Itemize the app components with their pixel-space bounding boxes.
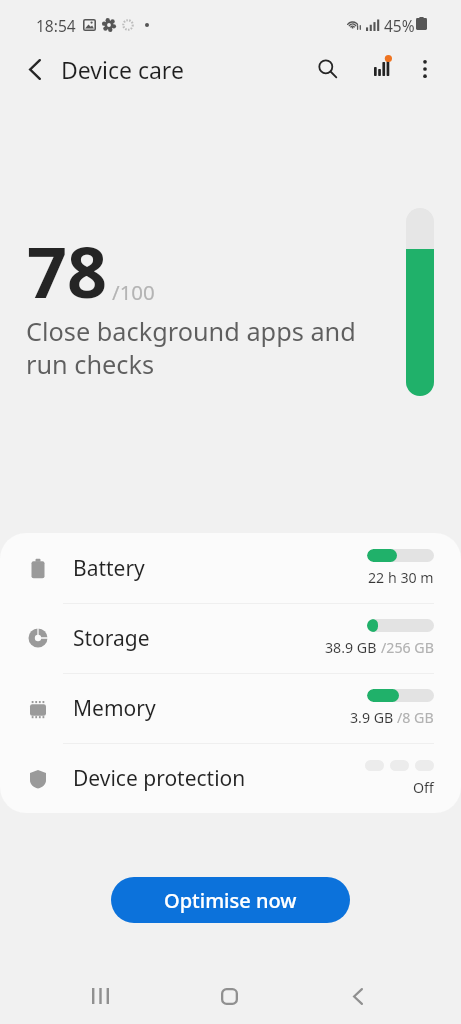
button[interactable]: Storage [0,603,461,673]
staticText: Battery [73,554,145,583]
button[interactable]: Diagnostics [363,50,400,87]
staticText: Close background apps and run checks [26,314,356,381]
button[interactable]: Optimise now [111,877,350,923]
staticText: 22 h 30 m [368,568,434,587]
staticText: Device protection [73,764,246,793]
button[interactable]: Recent apps [76,972,124,1020]
button[interactable]: More options [406,50,443,87]
button[interactable]: Memory [0,673,461,743]
staticText: /8 GB [397,708,434,727]
staticText: Storage [73,624,150,653]
staticText: 45% [384,15,415,36]
button[interactable]: Back [17,51,53,87]
staticText: Optimise now [164,887,297,914]
button[interactable]: Home [205,972,253,1020]
button[interactable]: Battery [0,533,461,603]
staticText: 3.9 GB [350,708,397,727]
staticText: /100 [112,278,155,306]
button[interactable]: Search [309,50,346,87]
staticText: Device care [61,54,184,85]
staticText: Memory [73,694,156,723]
staticText: 78 [27,223,108,318]
staticText: 38.9 GB [325,638,381,657]
staticText: /256 GB [381,638,434,657]
button[interactable]: Back [334,972,382,1020]
button[interactable]: Device protection [0,743,461,813]
staticText: Off [413,778,434,797]
staticText: 18:54 [36,15,76,36]
